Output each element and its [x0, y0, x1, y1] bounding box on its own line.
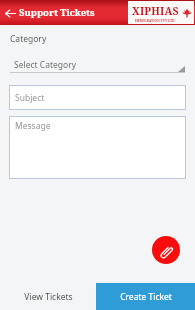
- staticText: View Tickets: [24, 291, 73, 303]
- staticText: XIPHIAS: [132, 4, 179, 18]
- staticText: Message: [15, 120, 51, 132]
- button[interactable]: Subject: [9, 85, 186, 110]
- button[interactable]: Message: [9, 116, 186, 179]
- staticText: Subject: [15, 92, 45, 104]
- button[interactable]: Attach file: [152, 236, 180, 264]
- button[interactable]: Create Ticket: [96, 283, 195, 310]
- staticText: Select Category: [14, 59, 77, 71]
- staticText: Category: [10, 33, 47, 45]
- staticText: IMMIGRATION PVT LTD.: [135, 18, 176, 22]
- staticText: Create Ticket: [120, 291, 172, 303]
- staticText: Support Tickets: [19, 6, 95, 19]
- button[interactable]: Back: [2, 5, 18, 21]
- button[interactable]: View Tickets: [0, 283, 96, 310]
- button[interactable]: Select Category: [10, 57, 185, 73]
